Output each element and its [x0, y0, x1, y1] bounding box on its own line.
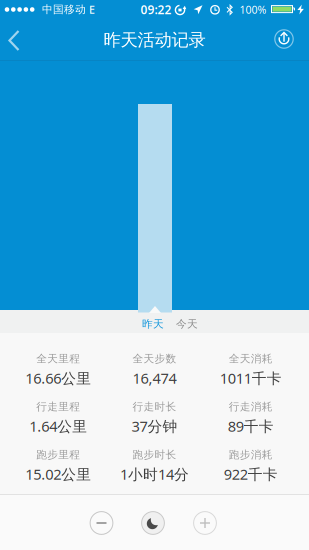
staticText: 16.66公里 [25, 368, 91, 388]
button[interactable]: Share [268, 23, 300, 54]
staticText: 1.64公里 [29, 416, 87, 436]
staticText: 中国移动 [42, 3, 86, 16]
staticText: 行走消耗 [229, 400, 273, 413]
staticText: 37分钟 [131, 416, 177, 436]
button[interactable]: Back [0, 24, 44, 57]
staticText: 09:22 [140, 1, 171, 17]
staticText: E [89, 2, 95, 17]
staticText: 15.02公里 [25, 464, 91, 484]
staticText: 行走里程 [36, 400, 80, 413]
staticText: 行走时长 [132, 400, 176, 413]
staticText: 跑步时长 [132, 448, 176, 461]
button[interactable]: Night mode [141, 511, 165, 535]
staticText: 全天里程 [36, 352, 80, 365]
staticText: 全天步数 [132, 352, 176, 365]
staticText: 1011千卡 [220, 368, 282, 388]
staticText: 昨天活动记录 [103, 29, 205, 51]
staticText: 今天 [176, 317, 198, 330]
staticText: 昨天 [142, 317, 164, 330]
button[interactable]: 今天 [168, 312, 206, 335]
staticText: 89千卡 [228, 416, 274, 436]
button[interactable]: Increase [193, 511, 217, 535]
staticText: 16,474 [132, 368, 176, 388]
staticText: 922千卡 [224, 464, 278, 484]
staticText: 全天消耗 [229, 352, 273, 365]
staticText: 100% [239, 2, 266, 17]
button[interactable]: 昨天 [134, 312, 172, 335]
staticText: 1小时14分 [120, 464, 189, 484]
staticText: 跑步里程 [36, 448, 80, 461]
button[interactable]: Decrease [89, 511, 113, 535]
staticText: 跑步消耗 [229, 448, 273, 461]
